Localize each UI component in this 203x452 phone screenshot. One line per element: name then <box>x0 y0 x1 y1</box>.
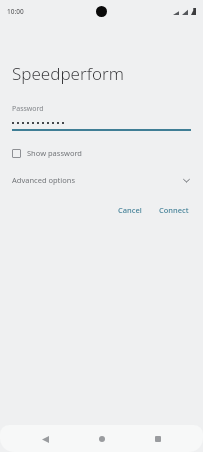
staticText: Speedperform <box>12 62 124 85</box>
staticText: Advanced options <box>12 175 76 185</box>
staticText: Cancel <box>118 205 142 215</box>
other: Expand advanced options <box>182 176 191 185</box>
button[interactable]: Back <box>34 428 56 450</box>
staticText: Show password <box>27 148 82 158</box>
staticText: 10:00 <box>7 7 24 16</box>
button[interactable]: Advanced options <box>0 171 203 189</box>
button[interactable]: Connect <box>153 201 195 219</box>
staticText: Password <box>12 104 44 114</box>
button[interactable]: Show password <box>10 146 84 160</box>
button[interactable]: Home <box>91 428 113 450</box>
button[interactable]: Recents <box>147 428 169 450</box>
button[interactable]: Cancel <box>112 201 148 219</box>
staticText: Connect <box>159 205 189 215</box>
